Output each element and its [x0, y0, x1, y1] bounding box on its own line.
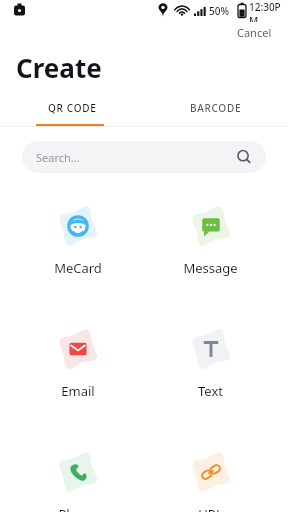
staticText: 50%: [209, 4, 229, 18]
staticText: Cancel: [237, 25, 272, 40]
staticText: QR CODE: [48, 101, 97, 115]
button[interactable]: QR CODE: [0, 97, 144, 126]
button[interactable]: BARCODE: [144, 97, 288, 126]
staticText: Search...: [36, 150, 80, 165]
staticText: Create: [16, 50, 102, 85]
button[interactable]: Cancel: [235, 23, 274, 42]
button[interactable]: Email: [21, 312, 134, 418]
staticText: MeCard: [54, 259, 102, 277]
button[interactable]: URL: [154, 435, 267, 512]
staticText: Text: [198, 382, 223, 400]
staticText: Message: [183, 259, 238, 277]
button[interactable]: Message: [154, 189, 267, 295]
other: Search: [236, 149, 252, 165]
staticText: 12:30PM: [249, 0, 288, 22]
button[interactable]: Search...: [22, 141, 266, 173]
staticText: URL: [198, 505, 223, 512]
button[interactable]: Phone: [21, 435, 134, 512]
staticText: Phone: [58, 505, 98, 512]
button[interactable]: MeCard: [21, 189, 134, 295]
button[interactable]: Text: [154, 312, 267, 418]
staticText: Email: [61, 382, 95, 400]
staticText: BARCODE: [190, 101, 242, 115]
